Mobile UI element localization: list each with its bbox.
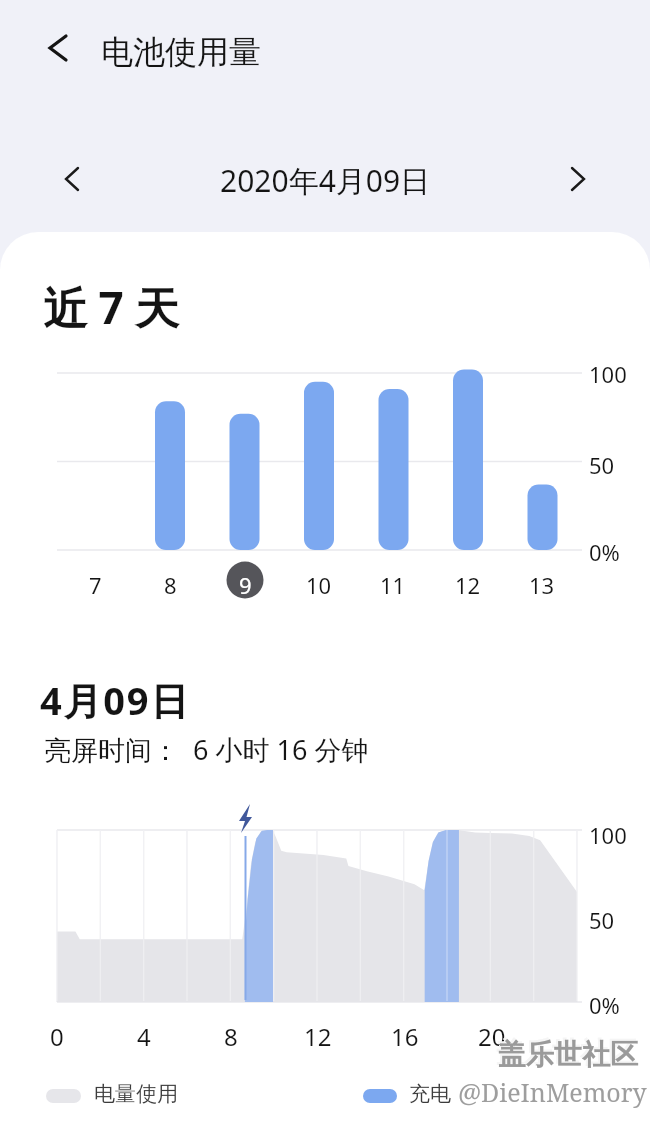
staticText: 近 7 天 xyxy=(43,277,180,337)
staticText: 亮屏时间： 6 小时 16 分钟 xyxy=(44,731,369,768)
button[interactable] xyxy=(550,154,598,202)
staticText: 100 xyxy=(589,820,627,850)
staticText: 0 xyxy=(50,1020,64,1053)
staticText: 电池使用量 xyxy=(101,32,261,72)
staticText: 盖乐世社区 xyxy=(498,1037,638,1072)
button[interactable] xyxy=(52,154,100,202)
staticText: 13 xyxy=(529,570,555,600)
staticText: 4月09日 xyxy=(40,674,191,726)
staticText: 7 xyxy=(89,570,102,600)
staticText: 10 xyxy=(306,570,332,600)
staticText: 0% xyxy=(589,537,620,567)
staticText: 50 xyxy=(589,905,615,935)
button[interactable]: 9 xyxy=(215,570,275,600)
staticText: 11 xyxy=(380,570,406,600)
staticText: 50 xyxy=(589,450,615,480)
staticText: 8 xyxy=(164,570,177,600)
staticText: 电量使用 xyxy=(94,1081,178,1107)
staticText: 100 xyxy=(589,359,627,389)
staticText: 盖乐世社区 xyxy=(496,1035,636,1070)
button[interactable]: 2020年4月09日 xyxy=(220,160,431,201)
staticText: 2020年4月09日 xyxy=(220,160,431,201)
staticText: 充电 xyxy=(409,1081,451,1107)
button[interactable] xyxy=(38,26,82,70)
staticText: 16 xyxy=(391,1020,419,1053)
staticText: 20 xyxy=(478,1020,506,1053)
staticText: 4 xyxy=(137,1020,151,1053)
staticText: 12 xyxy=(304,1020,332,1053)
staticText: 9 xyxy=(239,570,252,600)
staticText: 0% xyxy=(589,990,620,1020)
staticText: 8 xyxy=(224,1020,238,1053)
staticText: 12 xyxy=(455,570,481,600)
staticText: @DieInMemory xyxy=(458,1075,647,1109)
